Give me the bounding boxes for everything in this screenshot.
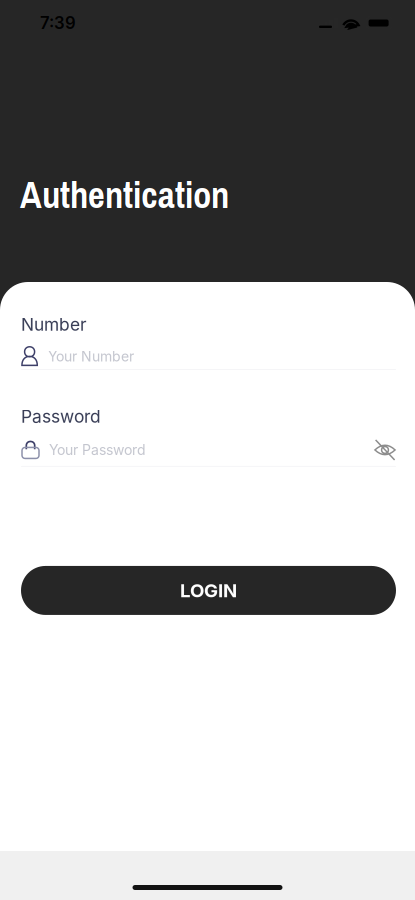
staticText: LOGIN xyxy=(180,579,237,602)
staticText: 7:39 xyxy=(40,13,76,33)
button[interactable]: LOGIN xyxy=(21,566,396,615)
staticText: Number xyxy=(21,314,87,335)
staticText: Your Password xyxy=(49,441,146,458)
button[interactable]: Show password xyxy=(374,439,396,461)
staticText: Your Number xyxy=(48,348,134,365)
staticText: Authentication xyxy=(20,170,229,219)
staticText: Password xyxy=(21,406,101,427)
